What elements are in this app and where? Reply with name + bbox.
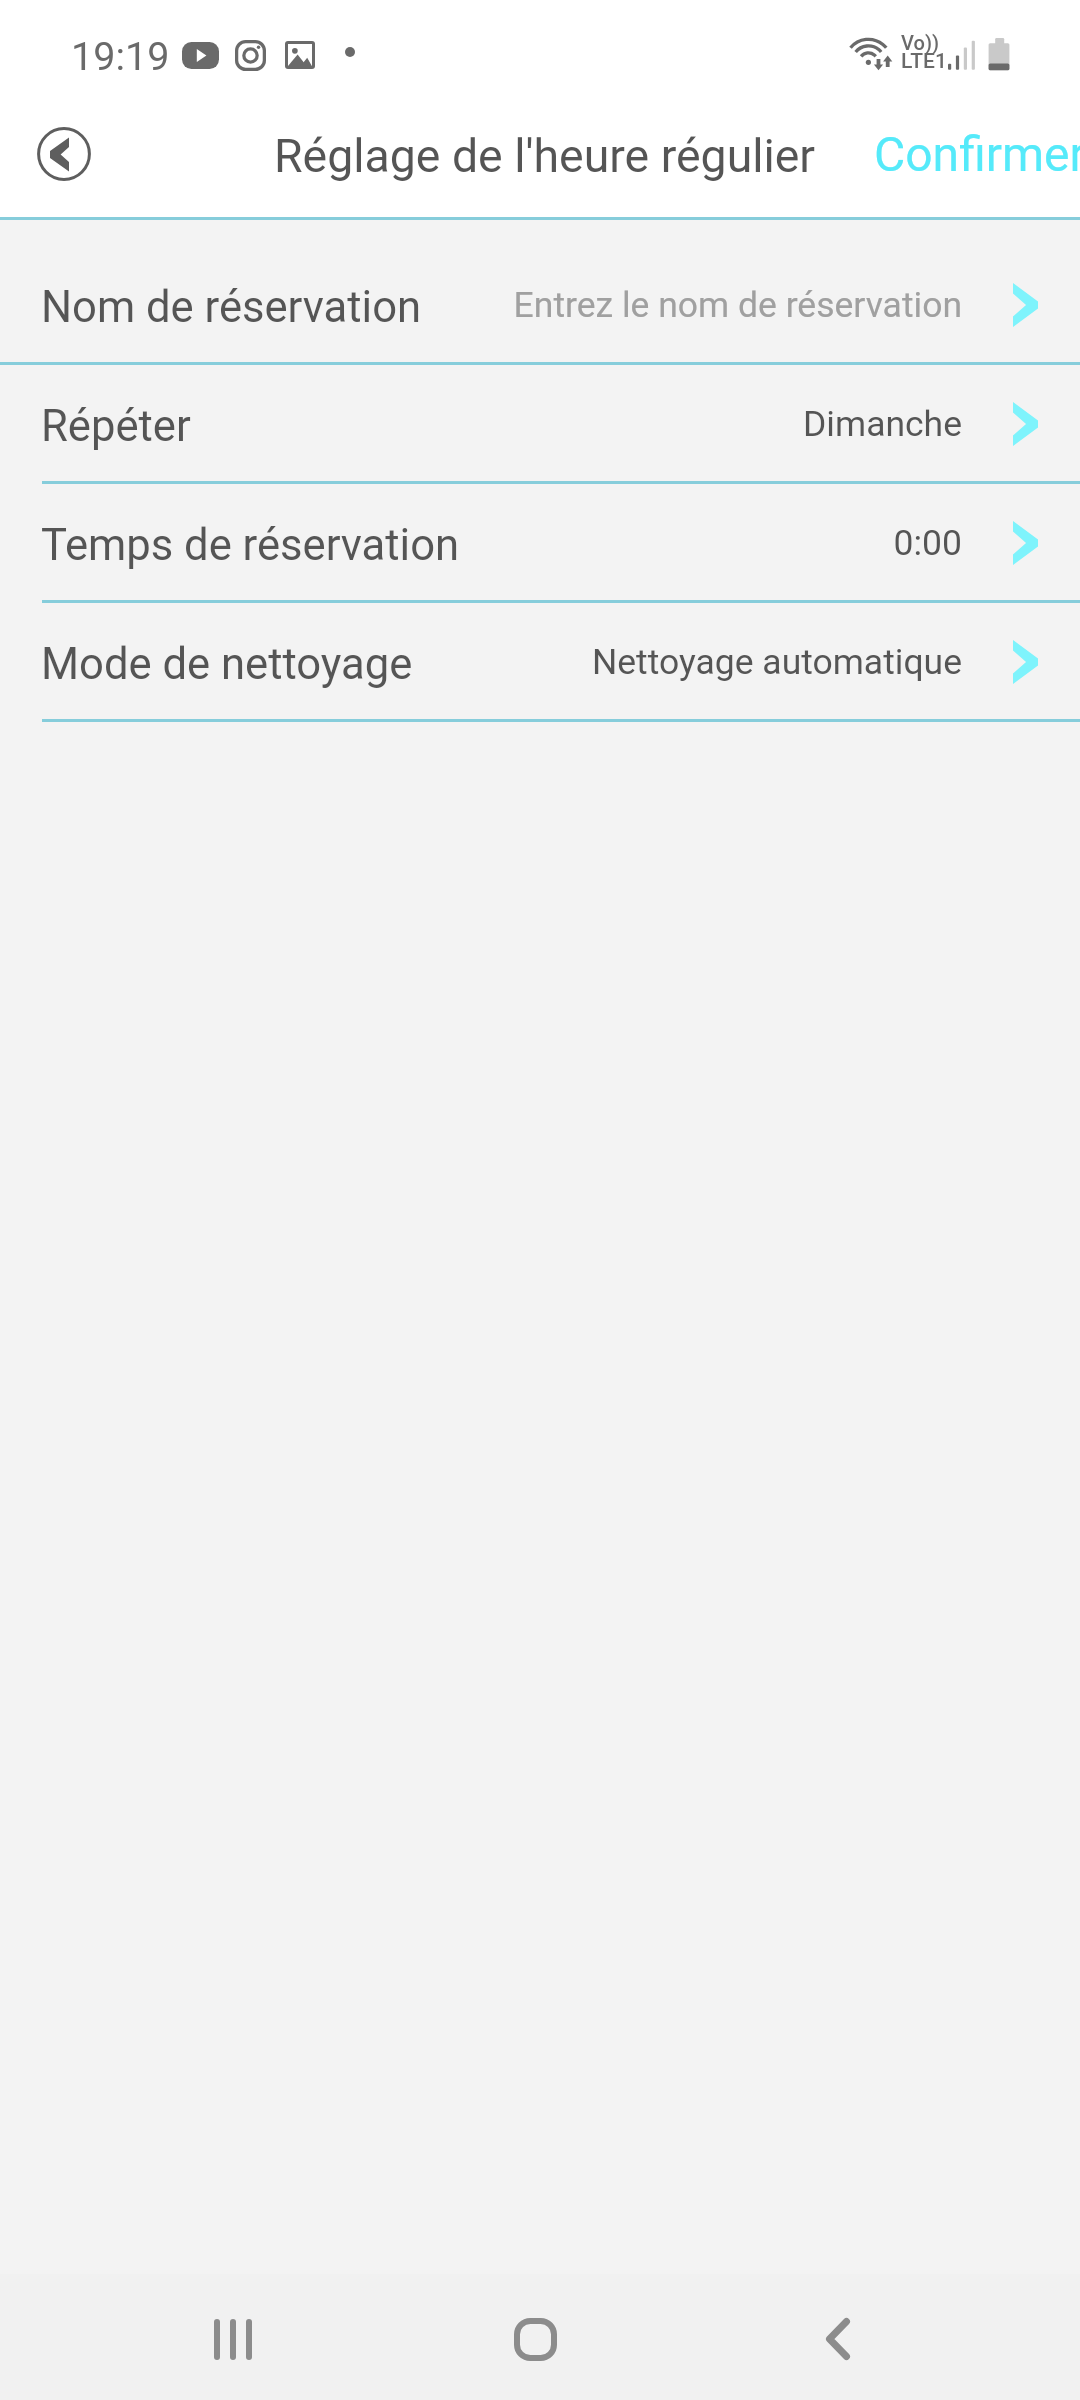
staticText: Réglage de l'heure régulier [274, 129, 816, 183]
button[interactable]: Back [778, 2274, 898, 2400]
staticText: Confirmer [874, 126, 1080, 182]
staticText: 19:19 [71, 33, 170, 79]
staticText: Temps de réservation [41, 520, 460, 571]
button[interactable]: Mode de nettoyage [0, 603, 1080, 719]
staticText: Répéter [41, 401, 191, 452]
staticText: Nom de réservation [41, 282, 422, 333]
button[interactable]: Home [475, 2274, 595, 2400]
button[interactable]: Back [18, 108, 110, 200]
button[interactable]: Nom de réservation [0, 220, 1080, 362]
staticText: LTE1 [901, 49, 947, 74]
button[interactable]: Répéter [0, 365, 1080, 481]
button[interactable]: Recent apps [173, 2274, 293, 2400]
staticText: 0:00 [893, 522, 962, 564]
staticText: Dimanche [803, 403, 962, 445]
staticText: Entrez le nom de réservation [513, 284, 962, 326]
staticText: Mode de nettoyage [41, 639, 413, 690]
staticText: Nettoyage automatique [591, 641, 962, 683]
button[interactable]: Temps de réservation [0, 484, 1080, 600]
button[interactable]: Confirmer [874, 126, 1080, 202]
staticText: Vo)) [901, 31, 940, 54]
